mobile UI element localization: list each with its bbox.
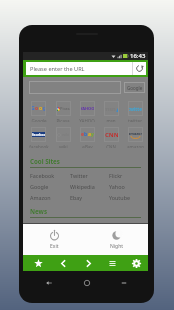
button[interactable]: Flickr xyxy=(109,170,148,181)
staticText: msn xyxy=(106,118,116,122)
button[interactable]: msn xyxy=(99,101,123,122)
button[interactable]: Bookmarks xyxy=(26,255,51,271)
staticText: msn xyxy=(104,105,116,112)
staticText: Night xyxy=(110,243,124,250)
button[interactable]: amazon xyxy=(123,127,147,148)
staticText: twitter xyxy=(128,106,143,112)
staticText: G xyxy=(31,105,35,112)
button[interactable]: Twitter xyxy=(70,170,109,181)
staticText: amazon xyxy=(128,131,143,136)
button[interactable]: Yahoo xyxy=(109,181,148,192)
button[interactable]: Facebook xyxy=(30,170,70,181)
staticText: Google xyxy=(30,183,49,190)
staticText: twitter xyxy=(128,118,142,122)
button[interactable]: Menu xyxy=(100,255,124,271)
staticText: Google xyxy=(31,118,47,122)
staticText: Picasa xyxy=(60,106,71,111)
button[interactable]: Back xyxy=(51,255,76,271)
button[interactable]: Night xyxy=(85,224,148,255)
staticText: 16:43 xyxy=(130,52,146,60)
staticText: Exit xyxy=(50,243,59,250)
staticText: a xyxy=(88,131,91,138)
button[interactable]: Home xyxy=(79,275,95,291)
staticText: Yahoo xyxy=(109,183,125,190)
staticText: Wikipedia xyxy=(70,183,95,190)
staticText: wiki xyxy=(59,144,68,148)
button[interactable]: Google xyxy=(30,181,70,192)
staticText: CNN xyxy=(105,131,119,139)
staticText: News xyxy=(30,207,48,215)
button[interactable]: facebook xyxy=(26,127,51,148)
staticText: Twitter xyxy=(70,172,88,179)
staticText: Facebook xyxy=(30,172,55,179)
button[interactable]: Ebay xyxy=(70,192,109,203)
staticText: CNN xyxy=(106,144,116,148)
button[interactable]: G xyxy=(26,101,51,122)
staticText: Google xyxy=(127,85,143,91)
button[interactable]: Back xyxy=(41,275,57,291)
button[interactable]: Exit xyxy=(23,224,85,255)
staticText: e xyxy=(81,131,84,138)
staticText: g xyxy=(43,105,46,112)
button[interactable]: wiki xyxy=(51,127,75,148)
button[interactable]: Forward xyxy=(76,255,100,271)
button[interactable]: CNN xyxy=(99,127,123,148)
button[interactable]: twitter xyxy=(123,101,147,122)
button[interactable]: Picasa xyxy=(51,101,75,122)
staticText: facebook xyxy=(29,144,49,148)
staticText: b xyxy=(84,131,88,138)
button[interactable]: Reload xyxy=(132,62,146,75)
staticText: o xyxy=(39,105,43,112)
staticText: YAHOO xyxy=(79,118,95,122)
staticText: Flickr xyxy=(109,172,123,179)
staticText: eBay xyxy=(82,144,93,148)
staticText: Amazon xyxy=(30,194,51,201)
button[interactable]: e xyxy=(75,127,99,148)
button[interactable]: Please enter the URL xyxy=(26,62,132,75)
staticText: Cool Sites xyxy=(30,157,60,165)
button[interactable]: Wikipedia xyxy=(70,181,109,192)
button[interactable]: Recents xyxy=(116,275,132,291)
staticText: Please enter the URL xyxy=(30,65,85,73)
button[interactable]: Youtube xyxy=(109,192,148,203)
button[interactable]: Google xyxy=(124,82,145,93)
staticText: amazon xyxy=(127,144,144,148)
button[interactable]: YAHOO! xyxy=(75,101,99,122)
button[interactable] xyxy=(29,81,121,94)
button[interactable]: Amazon xyxy=(30,192,70,203)
staticText: o xyxy=(35,105,39,112)
staticText: Youtube xyxy=(109,194,131,201)
staticText: facebook xyxy=(32,132,45,137)
staticText: y xyxy=(91,131,94,138)
button[interactable]: Settings xyxy=(124,255,148,271)
staticText: Picasa xyxy=(56,118,70,122)
staticText: Ebay xyxy=(70,194,83,201)
staticText: YAHOO! xyxy=(80,106,95,111)
